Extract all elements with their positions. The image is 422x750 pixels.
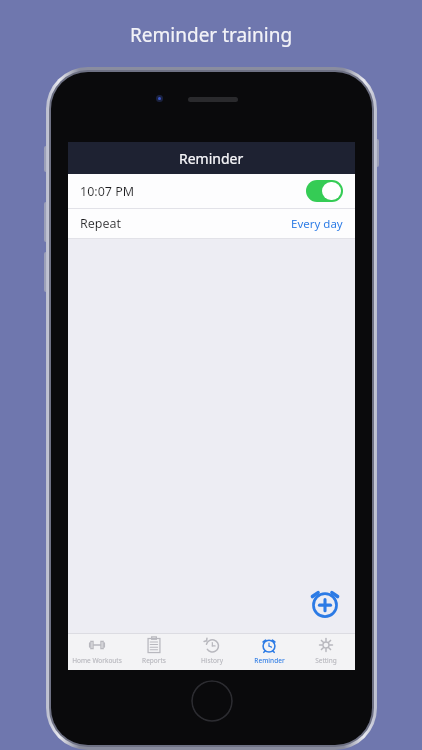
staticText: Reports	[142, 656, 166, 665]
button[interactable]: Reports	[126, 633, 182, 670]
button[interactable]: Home	[191, 680, 233, 722]
staticText: Home Workouts	[72, 656, 122, 665]
button[interactable]: History	[184, 633, 240, 670]
button[interactable]: Home Workouts	[69, 633, 125, 670]
button[interactable]: Add alarm	[307, 585, 343, 621]
staticText: Reminder training	[130, 22, 293, 48]
button[interactable]: Alarm enabled	[306, 180, 343, 202]
staticText: Reminder	[254, 656, 285, 665]
staticText: Reminder	[179, 149, 244, 168]
button[interactable]: Repeat	[68, 209, 355, 238]
button[interactable]: Setting	[298, 633, 354, 670]
staticText: Setting	[315, 656, 337, 665]
button[interactable]: 10:07 PM	[68, 174, 355, 208]
staticText: History	[201, 656, 223, 665]
staticText: Every day	[291, 216, 343, 232]
staticText: 10:07 PM	[80, 183, 135, 200]
staticText: Repeat	[80, 215, 122, 232]
button[interactable]: Reminder	[241, 633, 297, 670]
